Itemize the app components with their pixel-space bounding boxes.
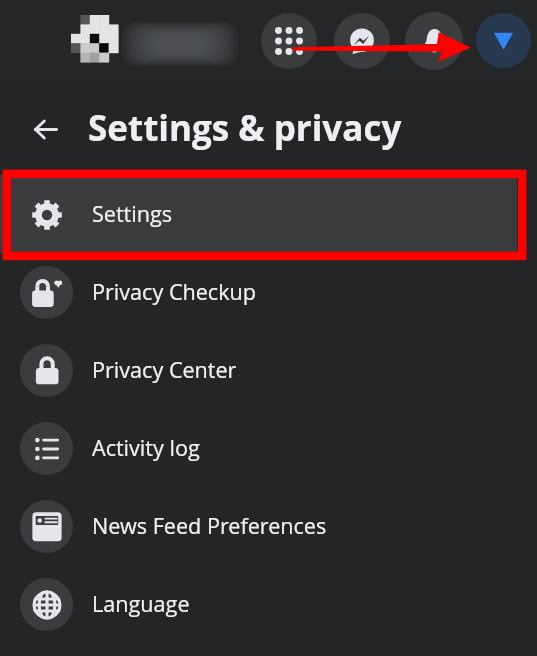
button[interactable]: Messenger — [334, 13, 390, 69]
button[interactable]: Back — [23, 106, 69, 152]
button[interactable]: News Feed Preferences — [0, 487, 537, 565]
button[interactable]: Notifications — [405, 12, 463, 70]
staticText: Privacy Checkup — [92, 277, 256, 306]
button[interactable]: Privacy Center — [0, 331, 537, 409]
button[interactable]: Settings — [0, 175, 537, 253]
staticText: Language — [92, 589, 190, 618]
staticText: Settings & privacy — [88, 104, 402, 152]
button[interactable]: Privacy Checkup — [0, 253, 537, 331]
button[interactable]: App menu — [261, 13, 317, 69]
staticText: Activity log — [92, 433, 200, 462]
staticText: Privacy Center — [92, 355, 237, 384]
button[interactable]: Activity log — [0, 409, 537, 487]
button[interactable]: Account menu — [476, 13, 531, 68]
staticText: News Feed Preferences — [92, 511, 327, 540]
button[interactable]: Language — [0, 565, 537, 643]
staticText: Settings — [92, 199, 173, 228]
